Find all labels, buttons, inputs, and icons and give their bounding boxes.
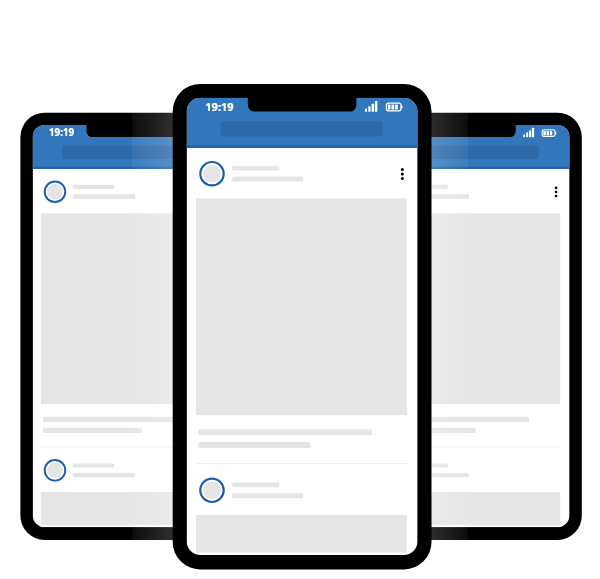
button[interactable]: Profile picture	[196, 160, 232, 194]
button[interactable]: Profile picture	[196, 476, 232, 510]
button[interactable]: More options	[395, 158, 413, 184]
